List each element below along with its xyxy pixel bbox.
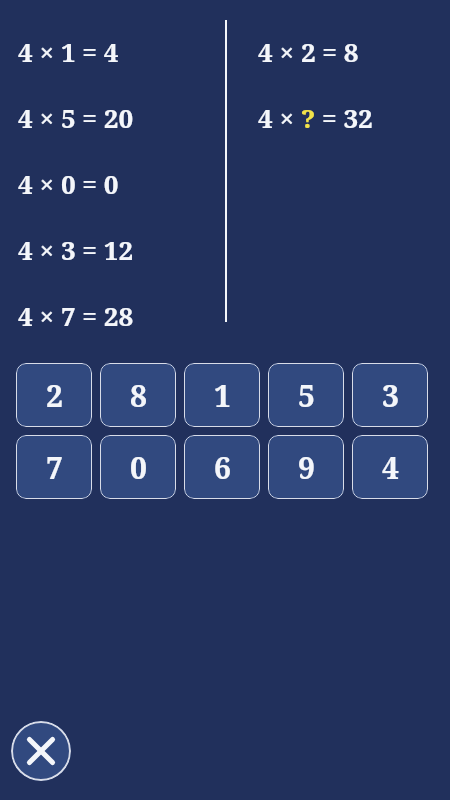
staticText: 8	[130, 375, 147, 416]
staticText: 1	[214, 375, 231, 416]
button[interactable]: 6	[184, 435, 260, 499]
staticText: 2	[46, 375, 63, 416]
staticText: 4 × 1 = 4	[18, 34, 119, 69]
staticText: 7	[46, 447, 63, 488]
staticText: 3	[382, 375, 399, 416]
staticText: 4 × 2 = 8	[258, 34, 359, 69]
button[interactable]: 2	[16, 363, 92, 427]
button[interactable]: 8	[100, 363, 176, 427]
staticText: 0	[130, 447, 147, 488]
button[interactable]: 9	[268, 435, 344, 499]
staticText: 4 × 3 = 12	[18, 232, 134, 267]
button[interactable]: 1	[184, 363, 260, 427]
staticText: 4 × 0 = 0	[18, 166, 119, 201]
button[interactable]: 7	[16, 435, 92, 499]
staticText: 5	[298, 375, 315, 416]
button[interactable]: 5	[268, 363, 344, 427]
staticText: 4 × 5 = 20	[18, 100, 134, 135]
staticText: 9	[298, 447, 315, 488]
staticText: 4	[382, 447, 399, 488]
button[interactable]: Close	[11, 721, 71, 781]
staticText: 6	[214, 447, 231, 488]
button[interactable]: 0	[100, 435, 176, 499]
staticText: 4 × 7 = 28	[18, 298, 134, 333]
button[interactable]: 4	[352, 435, 428, 499]
staticText: 4 × ? = 32	[258, 100, 373, 135]
button[interactable]: 3	[352, 363, 428, 427]
